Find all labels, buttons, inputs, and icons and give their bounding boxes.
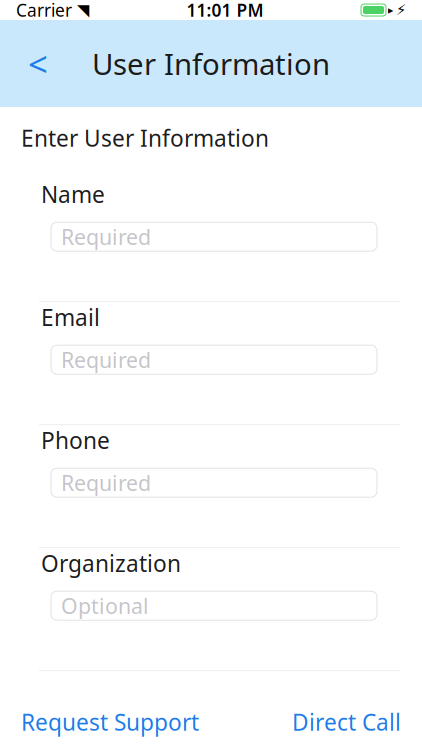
button[interactable]: Back — [16, 41, 60, 85]
staticText: Enter User Information — [21, 123, 269, 153]
button[interactable]: Direct Call — [292, 707, 401, 737]
staticText: Organization — [41, 548, 181, 578]
staticText: Carrier — [16, 0, 72, 21]
staticText: Direct Call — [292, 707, 401, 737]
staticText: Phone — [41, 425, 110, 455]
staticText: Name — [41, 179, 105, 209]
button[interactable]: Required — [51, 468, 377, 497]
staticText: Required — [61, 345, 151, 374]
staticText: < — [28, 40, 48, 86]
staticText: ◥ — [77, 1, 89, 19]
button[interactable]: Required — [51, 345, 377, 374]
staticText: 11:01 PM — [186, 0, 263, 21]
staticText: ⚡︎ — [396, 2, 406, 18]
button[interactable]: Required — [51, 222, 377, 251]
staticText: Required — [61, 222, 151, 251]
staticText: User Information — [92, 44, 330, 83]
staticText: Email — [41, 302, 100, 332]
staticText: Optional — [61, 591, 149, 620]
button[interactable]: Optional — [51, 591, 377, 620]
staticText: Required — [61, 468, 151, 497]
staticText: Request Support — [21, 707, 199, 737]
button[interactable]: Request Support — [21, 707, 199, 737]
staticText: ▸ — [388, 4, 393, 16]
